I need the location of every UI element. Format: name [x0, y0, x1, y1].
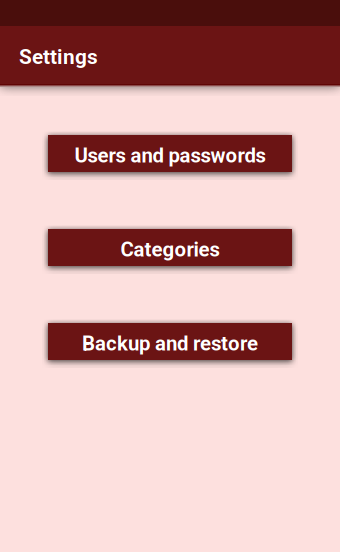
staticText: Settings: [19, 45, 98, 69]
button[interactable]: Backup and restore: [48, 323, 292, 360]
button[interactable]: Categories: [48, 229, 292, 266]
staticText: Categories: [120, 237, 219, 261]
button[interactable]: Users and passwords: [48, 135, 292, 172]
staticText: Users and passwords: [74, 143, 265, 167]
staticText: Backup and restore: [82, 331, 258, 355]
